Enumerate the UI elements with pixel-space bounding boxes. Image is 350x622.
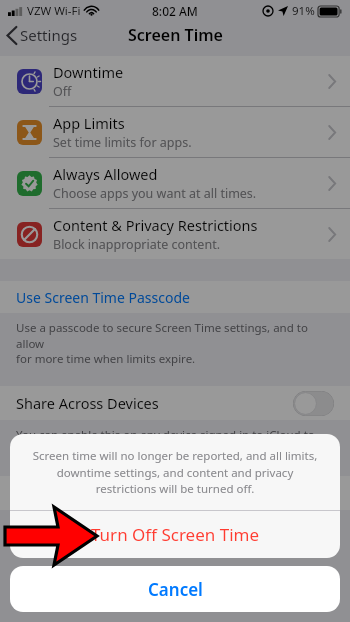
- button[interactable]: Share Across Devices: [0, 386, 350, 420]
- staticText: Turn Off Screen Time: [91, 523, 260, 546]
- staticText: Screen time will no longer be reported, …: [26, 448, 324, 496]
- button[interactable]: Settings: [7, 25, 78, 45]
- button[interactable]: App Limits: [0, 107, 350, 157]
- staticText: Cancel: [148, 578, 203, 601]
- staticText: App Limits: [53, 113, 125, 133]
- staticText: Use a passcode to secure Screen Time set…: [16, 320, 334, 366]
- button[interactable]: Always Allowed: [0, 158, 350, 208]
- button[interactable]: Content & Privacy Restrictions: [0, 209, 350, 259]
- staticText: Settings: [20, 25, 78, 45]
- staticText: Use Screen Time Passcode: [16, 288, 190, 307]
- staticText: 91%: [292, 3, 315, 19]
- staticText: Choose apps you want at all times.: [53, 185, 257, 202]
- staticText: Downtime: [53, 62, 124, 82]
- staticText: Always Allowed: [53, 164, 158, 184]
- button[interactable]: Cancel: [10, 566, 340, 612]
- button[interactable]: Turn Off Screen Time: [10, 511, 340, 558]
- staticText: Screen Time: [128, 24, 223, 46]
- button[interactable]: Use Screen Time Passcode: [0, 281, 350, 313]
- staticText: 8:02 AM: [152, 3, 198, 19]
- staticText: Off: [53, 83, 72, 100]
- staticText: VZW Wi-Fi: [27, 3, 81, 19]
- staticText: You can enable this on any device signed…: [16, 427, 315, 458]
- staticText: Content & Privacy Restrictions: [53, 215, 258, 235]
- staticText: Block inappropriate content.: [53, 236, 220, 253]
- staticText: Share Across Devices: [16, 393, 159, 413]
- staticText: Set time limits for apps.: [53, 134, 192, 151]
- button[interactable]: Downtime: [0, 56, 350, 106]
